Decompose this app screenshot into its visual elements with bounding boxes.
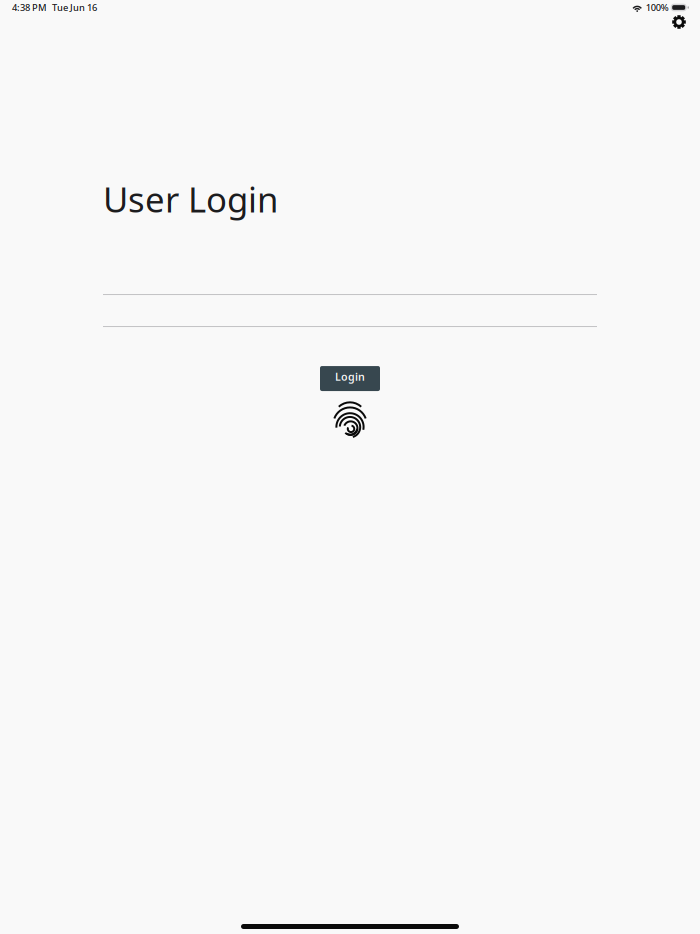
button[interactable]: Login <box>320 366 380 391</box>
staticText: 4:38 PM <box>12 1 47 14</box>
button[interactable]: Sign in with Touch ID <box>328 399 372 443</box>
staticText: User Login <box>103 176 278 222</box>
staticText: Login <box>335 369 365 384</box>
button[interactable]: Settings <box>666 15 692 29</box>
staticText: Tue Jun 16 <box>52 1 97 14</box>
staticText: 100% <box>646 1 669 14</box>
